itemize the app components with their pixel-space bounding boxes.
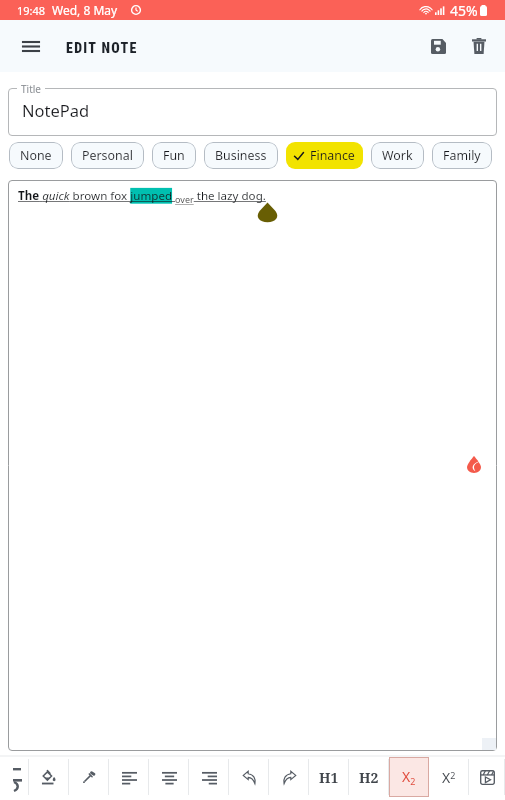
button[interactable]: Finance [286, 142, 363, 169]
button[interactable]: Personal [71, 142, 144, 169]
staticText: NotePad [22, 99, 90, 121]
button[interactable]: H1 [309, 757, 349, 797]
button[interactable]: Insert video [469, 757, 505, 797]
button[interactable]: Redo [269, 757, 309, 797]
staticText: None [20, 147, 52, 164]
button[interactable] [8, 180, 497, 751]
button[interactable]: Align right [189, 757, 229, 797]
staticText: X2 [442, 768, 456, 787]
button[interactable] [8, 88, 497, 136]
button[interactable]: Text colour [69, 757, 109, 797]
staticText: The quick brown fox jumped over the lazy… [18, 188, 266, 206]
button[interactable]: Work [371, 142, 424, 169]
button[interactable]: Undo [229, 757, 269, 797]
staticText: Business [215, 147, 267, 164]
button[interactable]: Delete note [456, 23, 502, 69]
staticText: H2 [359, 768, 379, 787]
button[interactable]: Text background colour [29, 757, 69, 797]
button[interactable]: Open navigation menu [8, 23, 54, 69]
button[interactable]: H2 [349, 757, 389, 797]
staticText: Fun [163, 147, 185, 164]
button[interactable]: Fun [152, 142, 196, 169]
button[interactable]: Align centre [149, 757, 189, 797]
staticText: X2 [402, 767, 416, 787]
staticText: 45% [450, 1, 478, 20]
button[interactable]: Business [204, 142, 278, 169]
staticText: Title [21, 82, 41, 96]
staticText: Work [382, 147, 413, 164]
button[interactable]: X2 [389, 757, 429, 797]
button[interactable]: Save note [415, 23, 461, 69]
staticText: Finance [310, 147, 355, 164]
button[interactable]: Family [432, 142, 492, 169]
staticText: Personal [82, 147, 133, 164]
button[interactable]: Align left [109, 757, 149, 797]
button[interactable]: X2 [429, 757, 469, 797]
staticText: 19:48 [17, 3, 46, 18]
staticText: Wed, 8 May [52, 2, 118, 18]
staticText: Family [443, 147, 481, 164]
staticText: H1 [319, 768, 339, 787]
staticText: EDIT NOTE [66, 40, 138, 56]
button[interactable]: Format list [0, 757, 29, 797]
button[interactable]: None [9, 142, 63, 169]
